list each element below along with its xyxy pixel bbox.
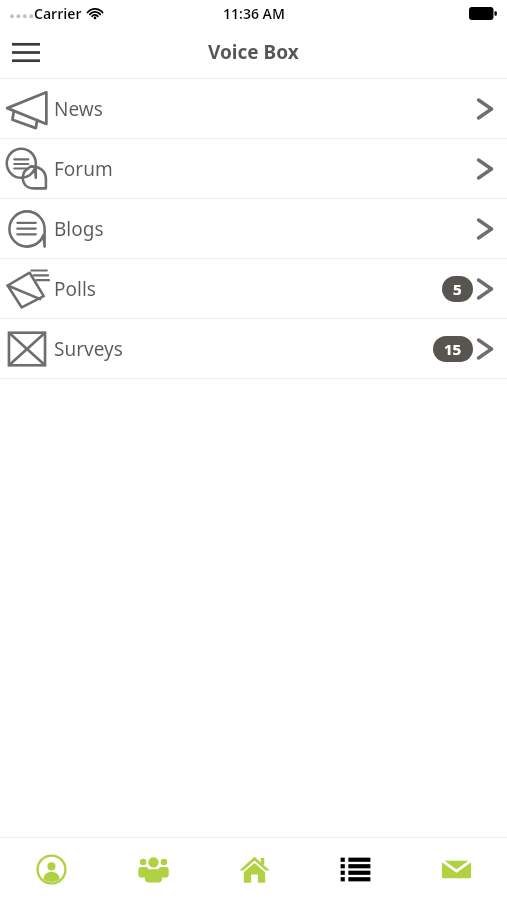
staticText: 5 (453, 279, 462, 299)
button[interactable]: News (0, 79, 507, 138)
button[interactable]: Forum (0, 139, 507, 198)
staticText: Polls (54, 276, 96, 302)
staticText: Surveys (54, 336, 123, 362)
staticText: Carrier (34, 4, 82, 23)
button[interactable]: Menu (4, 30, 48, 74)
button[interactable]: Polls (0, 259, 507, 318)
staticText: Forum (54, 156, 113, 182)
staticText: 11:36 AM (223, 4, 285, 23)
button[interactable]: Blogs (0, 199, 507, 258)
button[interactable]: Surveys (0, 319, 507, 378)
staticText: Voice Box (208, 39, 299, 65)
button[interactable]: List (305, 838, 406, 900)
staticText: News (54, 96, 103, 122)
button[interactable]: Messages (406, 838, 507, 900)
staticText: 15 (444, 339, 462, 359)
button[interactable]: Profile (0, 838, 102, 900)
staticText: Blogs (54, 216, 104, 242)
button[interactable]: Home (204, 838, 305, 900)
button[interactable]: Groups (102, 838, 204, 900)
